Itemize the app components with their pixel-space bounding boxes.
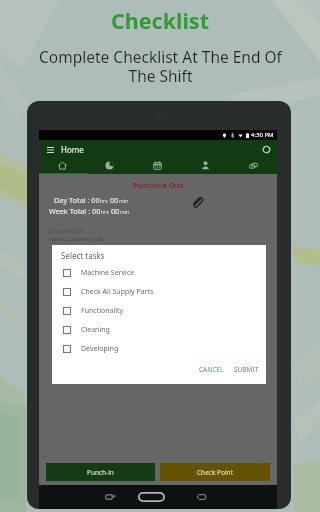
button[interactable]: Recents — [101, 488, 119, 506]
staticText: Home — [61, 144, 84, 155]
staticText: min — [120, 209, 130, 216]
staticText: Machine Service — [81, 268, 135, 278]
button[interactable]: Developing — [52, 339, 266, 358]
staticText: Select tasks — [61, 250, 105, 261]
button[interactable]: Payments tab — [229, 158, 277, 174]
staticText: Week Total : 00 — [49, 206, 101, 216]
button[interactable]: Punch-in — [46, 463, 155, 481]
staticText: Checklist — [111, 6, 209, 35]
button[interactable]: Check Point — [160, 463, 270, 481]
staticText: Punch-in — [87, 468, 114, 477]
button[interactable]: Check All Supply Parts — [52, 282, 266, 301]
staticText: Developing — [81, 344, 119, 354]
button[interactable]: Profile tab — [181, 158, 229, 174]
button[interactable]: CANCEL — [196, 362, 227, 377]
button[interactable]: Menu — [44, 143, 57, 156]
staticText: Customer: Job — [47, 227, 84, 234]
button[interactable]: Reports tab — [86, 158, 133, 174]
button[interactable]: Machine Service — [52, 263, 266, 282]
button[interactable]: Refresh — [259, 142, 273, 156]
button[interactable]: Functionality — [52, 301, 266, 320]
staticText: 00 — [109, 206, 120, 216]
staticText: Punched Out — [133, 180, 184, 191]
staticText: Check Point — [197, 468, 233, 477]
button[interactable]: Attach — [190, 195, 204, 209]
staticText: Cleaning — [81, 325, 110, 335]
button[interactable]: Home tab — [39, 158, 86, 174]
staticText: hrs — [100, 198, 108, 205]
staticText: Functionality — [81, 306, 124, 316]
button[interactable]: Home button — [136, 485, 166, 509]
staticText: 00 — [108, 195, 119, 205]
staticText: Complete Checklist At The End Of The Shi… — [39, 46, 282, 86]
staticText: Day Total : 00 — [54, 195, 100, 205]
button[interactable]: Back — [192, 488, 210, 506]
staticText: SUBMIT — [234, 365, 259, 374]
staticText: 4:30 PM — [251, 131, 274, 139]
staticText: Select Customer: Job — [49, 235, 103, 242]
button[interactable]: Cleaning — [52, 320, 266, 339]
button[interactable]: SUBMIT — [231, 362, 262, 377]
staticText: hrs — [101, 209, 109, 216]
staticText: CANCEL — [199, 365, 224, 374]
staticText: Check All Supply Parts — [81, 287, 154, 297]
staticText: min — [119, 198, 129, 205]
button[interactable]: Schedule tab — [133, 158, 181, 174]
